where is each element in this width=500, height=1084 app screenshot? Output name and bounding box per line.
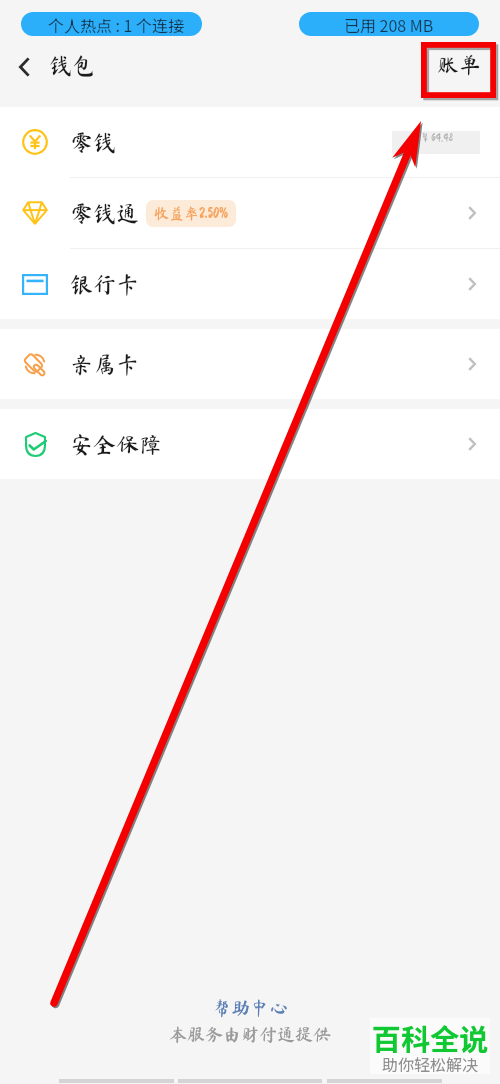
button[interactable]: 零钱 [0,107,500,177]
button[interactable]: 亲属卡 [0,329,500,399]
staticText: 账单 [437,54,482,76]
button[interactable]: 零钱通 [0,178,500,248]
staticText: 个人热点 : 1 个连接 [48,13,185,36]
staticText: 收益率2.50% [154,206,228,221]
button[interactable]: Back [5,48,43,86]
button[interactable]: 安全保障 [0,409,500,479]
staticText: 钱包 [49,54,95,77]
staticText: 帮助中心 [212,998,289,1017]
staticText: 助你轻松解决 [382,1052,479,1075]
staticText: 本服务由财付通提供 [169,1025,331,1043]
button[interactable]: 帮助中心 [198,994,303,1021]
staticText: 零钱通 [70,202,139,225]
staticText: 银行卡 [70,273,139,296]
staticText: 百科全说 [372,1016,489,1058]
staticText: 亲属卡 [70,353,139,376]
staticText: ￥64.48 [419,131,453,143]
button[interactable]: 银行卡 [0,249,500,319]
staticText: 安全保障 [70,433,162,456]
button[interactable]: 账单 [429,42,489,88]
staticText: 零钱 [70,131,116,154]
staticText: 已用 208 MB [344,13,434,36]
